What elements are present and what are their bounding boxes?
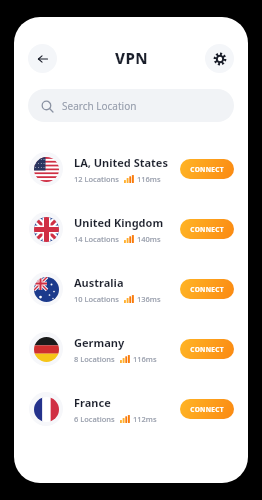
button[interactable]: LA, United States (28, 139, 234, 199)
staticText: 6 Locations (74, 414, 115, 424)
button[interactable]: Settings (205, 44, 234, 73)
button[interactable]: CONNECT (180, 279, 234, 299)
button[interactable]: Australia (28, 259, 234, 319)
button[interactable]: United Kingdom (28, 199, 234, 259)
staticText: 12 Locations (74, 174, 119, 184)
button[interactable]: France (28, 379, 234, 439)
staticText: CONNECT (190, 345, 224, 354)
staticText: 116ms (133, 354, 157, 364)
staticText: 10 Locations (74, 294, 119, 304)
staticText: Germany (74, 335, 125, 350)
staticText: CONNECT (190, 405, 224, 414)
staticText: 136ms (137, 294, 161, 304)
staticText: 116ms (137, 174, 161, 184)
staticText: United Kingdom (74, 215, 164, 230)
staticText: CONNECT (190, 225, 224, 234)
button[interactable]: CONNECT (180, 399, 234, 419)
button[interactable]: CONNECT (180, 339, 234, 359)
button[interactable]: Germany (28, 319, 234, 379)
button[interactable]: CONNECT (180, 219, 234, 239)
staticText: CONNECT (190, 165, 224, 174)
staticText: CONNECT (190, 285, 224, 294)
button[interactable]: Back (28, 44, 57, 73)
staticText: 14 Locations (74, 234, 119, 244)
staticText: Search Location (62, 99, 137, 113)
staticText: VPN (115, 48, 148, 68)
staticText: France (74, 395, 111, 410)
staticText: Australia (74, 275, 124, 290)
staticText: LA, United States (74, 155, 168, 170)
staticText: 8 Locations (74, 354, 115, 364)
staticText: 140ms (137, 234, 161, 244)
button[interactable]: CONNECT (180, 159, 234, 179)
button[interactable]: Search Location (28, 89, 234, 122)
staticText: 112ms (133, 414, 157, 424)
